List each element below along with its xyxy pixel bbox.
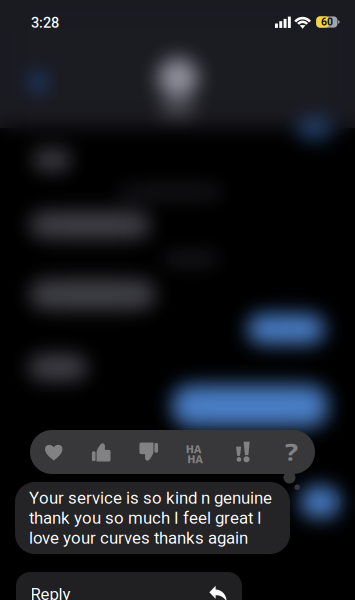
button[interactable]: Love xyxy=(30,430,77,474)
staticText: HA xyxy=(187,451,203,467)
button[interactable]: Haha xyxy=(172,430,220,474)
staticText: Your service is so kind n genuine xyxy=(29,488,272,508)
staticText: ? xyxy=(284,436,299,468)
button[interactable]: Reply xyxy=(16,572,242,600)
button[interactable]: Question mark xyxy=(267,430,315,474)
staticText: 3:28 xyxy=(31,14,59,31)
button[interactable]: Exclamation xyxy=(220,430,267,474)
staticText: Reply xyxy=(30,584,70,600)
button[interactable]: Thumbs up xyxy=(77,430,125,474)
staticText: 60 xyxy=(321,16,333,28)
staticText: love your curves thanks again xyxy=(29,528,248,548)
staticText: thank you so much I feel great I xyxy=(29,508,262,528)
button[interactable]: Thumbs down xyxy=(125,430,172,474)
staticText: HA xyxy=(186,441,202,457)
